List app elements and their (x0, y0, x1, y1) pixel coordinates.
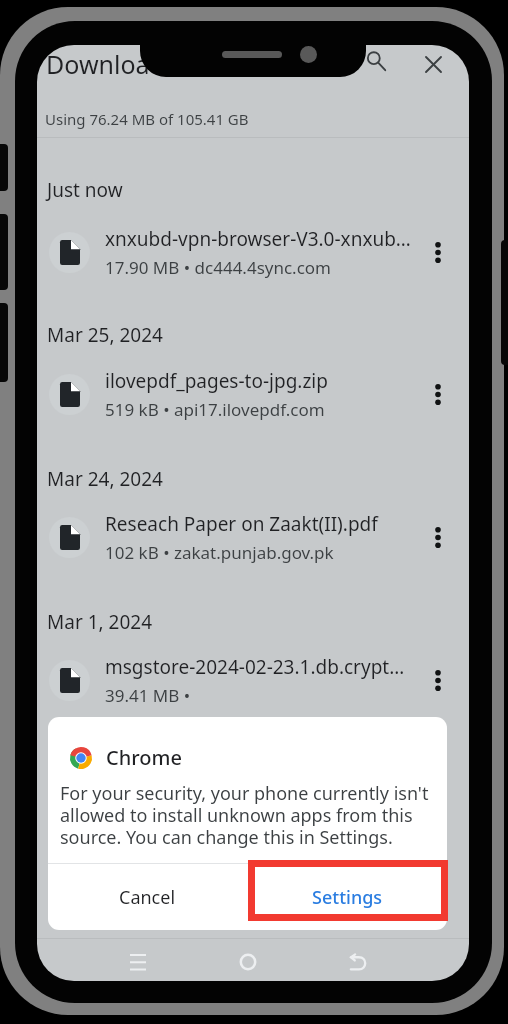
staticText: Using 76.24 MB of 105.41 GB (45, 109, 249, 129)
button[interactable]: More options (416, 515, 460, 559)
button[interactable]: ilovepdf_pages-to-jpg.zip (37, 358, 469, 430)
staticText: xnxubd-vpn-browser-V3.0-xnxub… (105, 226, 411, 252)
button[interactable]: Settings (247, 864, 447, 930)
staticText: 102 kB • zakat.punjab.gov.pk (105, 541, 334, 564)
button[interactable]: Search (354, 45, 398, 83)
staticText: Settings (312, 885, 383, 910)
staticText: 39.41 MB • (105, 684, 191, 707)
button[interactable]: Home (226, 940, 270, 981)
staticText: Reseach Paper on Zaakt(II).pdf (105, 511, 378, 537)
staticText: Just now (47, 177, 123, 203)
staticText: For your security, your phone currently … (60, 781, 439, 849)
button[interactable]: Cancel (48, 864, 247, 930)
staticText: msgstore-2024-02-23.1.db.crypt… (105, 654, 405, 680)
staticText: Mar 1, 2024 (47, 609, 153, 635)
staticText: ilovepdf_pages-to-jpg.zip (105, 368, 328, 394)
button[interactable]: More options (416, 372, 460, 416)
staticText: Downloads (46, 47, 177, 81)
button[interactable]: More options (416, 658, 460, 702)
button[interactable]: Back (336, 940, 380, 981)
staticText: 519 kB • api17.ilovepdf.com (105, 398, 325, 421)
button[interactable]: Recent apps (116, 940, 160, 981)
button[interactable]: Reseach Paper on Zaakt(II).pdf (37, 501, 469, 573)
staticText: Mar 24, 2024 (47, 466, 163, 492)
button[interactable]: Close (411, 45, 455, 86)
button[interactable]: More options (416, 230, 460, 274)
staticText: Cancel (119, 885, 176, 910)
staticText: Mar 25, 2024 (47, 322, 163, 348)
button[interactable]: msgstore-2024-02-23.1.db.crypt… (37, 644, 469, 716)
staticText: Chrome (106, 744, 182, 771)
staticText: 17.90 MB • dc444.4sync.com (105, 256, 332, 279)
button[interactable]: xnxubd-vpn-browser-V3.0-xnxub… (37, 216, 469, 288)
